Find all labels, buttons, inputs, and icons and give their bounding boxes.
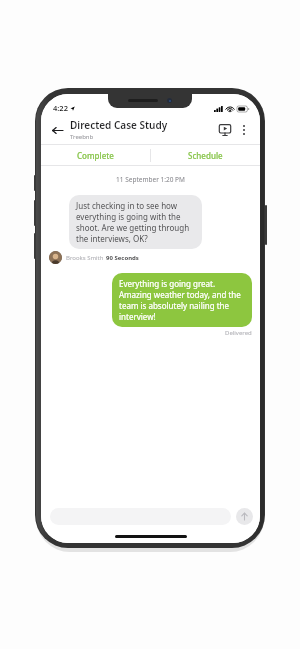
staticText: Brooks Smith (66, 254, 106, 262)
button[interactable]: Present (216, 121, 234, 139)
button[interactable]: Send (236, 508, 253, 525)
staticText: Delivered (225, 329, 252, 337)
staticText: Just checking in to see how everything i… (76, 200, 195, 244)
staticText: 90 Seconds (106, 254, 139, 262)
button[interactable]: Just checking in to see how everything i… (69, 195, 202, 249)
staticText: Treebnb (70, 133, 94, 141)
staticText: Directed Case Study (70, 118, 168, 132)
staticText: Complete (77, 150, 114, 161)
button[interactable]: Complete (41, 145, 150, 165)
staticText: Schedule (188, 150, 223, 161)
button[interactable]: Back (49, 122, 65, 138)
button[interactable]: Everything is going great. Amazing weath… (112, 273, 252, 327)
button[interactable]: More options (236, 122, 252, 138)
staticText: 11 September 1:20 PM (41, 175, 260, 184)
button[interactable]: Schedule (151, 145, 260, 165)
staticText: 4:22 (53, 103, 68, 113)
staticText: Everything is going great. Amazing weath… (119, 278, 245, 322)
